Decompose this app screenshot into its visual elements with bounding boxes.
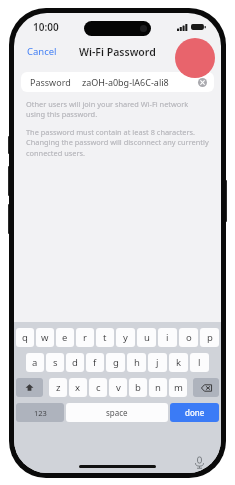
button[interactable]: k xyxy=(169,353,188,372)
staticText: 10:00 xyxy=(33,20,59,34)
button[interactable]: Password xyxy=(21,72,214,92)
staticText: l xyxy=(198,356,201,369)
staticText: r xyxy=(83,331,87,344)
staticText: zaOH-a0bg-lA6C-ali8 xyxy=(82,76,169,88)
button[interactable]: a xyxy=(26,353,44,372)
button[interactable]: u xyxy=(137,328,156,347)
staticText: v xyxy=(116,381,121,394)
button[interactable]: Done xyxy=(170,41,221,62)
button[interactable]: i xyxy=(158,328,177,347)
staticText: t xyxy=(103,331,107,344)
button[interactable]: d xyxy=(66,353,84,372)
staticText: o xyxy=(186,331,192,344)
staticText: done xyxy=(185,407,205,418)
button[interactable]: x xyxy=(69,378,87,397)
button[interactable]: h xyxy=(127,353,146,372)
staticText: p xyxy=(207,331,213,344)
button[interactable]: w xyxy=(36,328,54,347)
button[interactable]: Shift xyxy=(16,378,43,397)
button[interactable]: j xyxy=(148,353,167,372)
button[interactable]: s xyxy=(46,353,64,372)
staticText: Password xyxy=(30,76,71,88)
staticText: b xyxy=(135,381,141,394)
button[interactable]: o xyxy=(179,328,198,347)
button[interactable]: r xyxy=(76,328,94,347)
staticText: Cancel xyxy=(27,45,57,58)
button[interactable]: done xyxy=(170,403,219,422)
staticText: Wi-Fi Password xyxy=(79,45,156,59)
button[interactable]: e xyxy=(56,328,74,347)
staticText: y xyxy=(123,331,128,344)
button[interactable]: n xyxy=(149,378,167,397)
button[interactable]: m xyxy=(169,378,187,397)
staticText: x xyxy=(75,381,81,394)
staticText: s xyxy=(53,356,58,369)
staticText: z xyxy=(56,381,61,394)
button[interactable]: Clear password xyxy=(198,78,207,87)
staticText: k xyxy=(176,356,182,369)
button[interactable]: Backspace xyxy=(193,378,219,397)
button[interactable]: q xyxy=(16,328,34,347)
staticText: f xyxy=(93,356,97,369)
button[interactable]: f xyxy=(86,353,104,372)
button[interactable]: Dictate xyxy=(193,456,206,469)
staticText: m xyxy=(174,381,183,394)
button[interactable]: l xyxy=(190,353,209,372)
button[interactable]: 123 xyxy=(16,403,64,422)
button[interactable]: v xyxy=(109,378,127,397)
staticText: u xyxy=(144,331,150,344)
staticText: n xyxy=(155,381,161,394)
button[interactable]: c xyxy=(89,378,107,397)
button[interactable]: g xyxy=(106,353,125,372)
staticText: j xyxy=(156,356,159,369)
staticText: a xyxy=(32,356,38,369)
staticText: g xyxy=(113,356,119,369)
staticText: c xyxy=(96,381,101,394)
button[interactable]: t xyxy=(96,328,114,347)
staticText: d xyxy=(72,356,78,369)
button[interactable]: p xyxy=(200,328,219,347)
staticText: q xyxy=(22,331,28,344)
button[interactable]: space xyxy=(66,403,168,422)
button[interactable]: y xyxy=(116,328,135,347)
staticText: h xyxy=(134,356,140,369)
staticText: w xyxy=(41,331,49,344)
button[interactable]: Cancel xyxy=(14,41,70,62)
staticText: The password must contain at least 8 cha… xyxy=(26,127,209,158)
staticText: i xyxy=(166,331,169,344)
button[interactable]: b xyxy=(129,378,147,397)
staticText: e xyxy=(62,331,68,344)
staticText: 123 xyxy=(34,408,47,418)
staticText: Other users will join your shared Wi-Fi … xyxy=(26,99,209,119)
button[interactable]: z xyxy=(49,378,67,397)
staticText: space xyxy=(106,407,128,418)
